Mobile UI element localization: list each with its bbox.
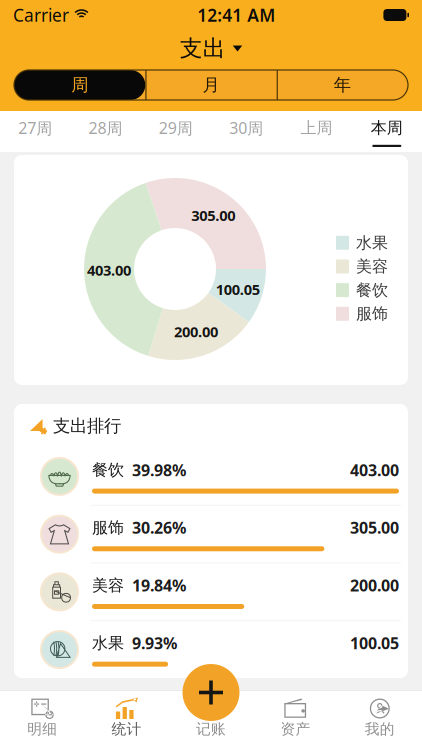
staticText: 本周 bbox=[371, 118, 403, 138]
staticText: 记账 bbox=[196, 720, 226, 738]
staticText: 12:41 AM bbox=[197, 3, 275, 26]
staticText: 30周 bbox=[229, 117, 263, 138]
button[interactable]: 28周 bbox=[70, 111, 141, 152]
staticText: 餐饮 bbox=[356, 280, 388, 300]
button[interactable]: 美容 bbox=[14, 563, 408, 620]
button[interactable]: 记账 bbox=[169, 690, 253, 750]
staticText: 403.00 bbox=[350, 459, 399, 480]
staticText: 100.05 bbox=[350, 632, 399, 654]
staticText: 我的 bbox=[365, 720, 395, 738]
staticText: 餐饮 bbox=[92, 460, 124, 480]
staticText: 100.05 bbox=[216, 279, 260, 299]
staticText: 支出 bbox=[180, 35, 226, 62]
staticText: Carrier bbox=[13, 3, 69, 26]
staticText: 支出排行 bbox=[53, 415, 121, 437]
staticText: 服饰 bbox=[356, 304, 388, 324]
button[interactable]: 29周 bbox=[141, 111, 211, 152]
button[interactable]: 27周 bbox=[0, 111, 70, 152]
staticText: 月 bbox=[202, 74, 219, 96]
button[interactable]: 30周 bbox=[211, 111, 281, 152]
button[interactable]: 水果 bbox=[14, 621, 408, 678]
staticText: 403.00 bbox=[87, 260, 131, 280]
button[interactable]: 上周 bbox=[281, 111, 352, 152]
button[interactable]: 年 bbox=[277, 70, 408, 100]
button[interactable]: 统计 bbox=[84, 690, 169, 750]
staticText: 统计 bbox=[112, 720, 142, 738]
staticText: 305.00 bbox=[350, 517, 399, 538]
button[interactable]: 资产 bbox=[253, 690, 338, 750]
staticText: 明细 bbox=[27, 720, 57, 738]
staticText: 19.84% bbox=[124, 575, 186, 596]
staticText: 服饰 bbox=[92, 518, 124, 537]
button[interactable]: 本周 bbox=[352, 111, 422, 152]
staticText: 年 bbox=[334, 74, 351, 96]
staticText: 27周 bbox=[18, 117, 52, 138]
staticText: 美容 bbox=[356, 257, 388, 276]
staticText: 资产 bbox=[280, 720, 310, 738]
staticText: 39.98% bbox=[124, 459, 186, 480]
staticText: 水果 bbox=[356, 233, 388, 253]
staticText: 29周 bbox=[159, 117, 193, 138]
button[interactable]: 记账 bbox=[182, 664, 239, 721]
staticText: 9.93% bbox=[124, 632, 177, 654]
staticText: 200.00 bbox=[174, 322, 218, 341]
button[interactable]: 周 bbox=[14, 70, 145, 100]
button[interactable]: 服饰 bbox=[14, 506, 408, 563]
staticText: 28周 bbox=[88, 117, 122, 138]
staticText: 上周 bbox=[300, 118, 332, 138]
staticText: 美容 bbox=[92, 575, 124, 595]
staticText: 305.00 bbox=[191, 205, 235, 225]
staticText: 水果 bbox=[92, 633, 124, 653]
staticText: 30.26% bbox=[124, 517, 186, 538]
button[interactable]: 支出 bbox=[180, 27, 242, 70]
button[interactable]: 月 bbox=[145, 70, 277, 100]
staticText: 200.00 bbox=[350, 575, 399, 596]
button[interactable]: 我的 bbox=[338, 690, 422, 750]
staticText: 周 bbox=[71, 74, 88, 96]
button[interactable]: 餐饮 bbox=[14, 448, 408, 505]
button[interactable]: 明细 bbox=[0, 690, 84, 750]
